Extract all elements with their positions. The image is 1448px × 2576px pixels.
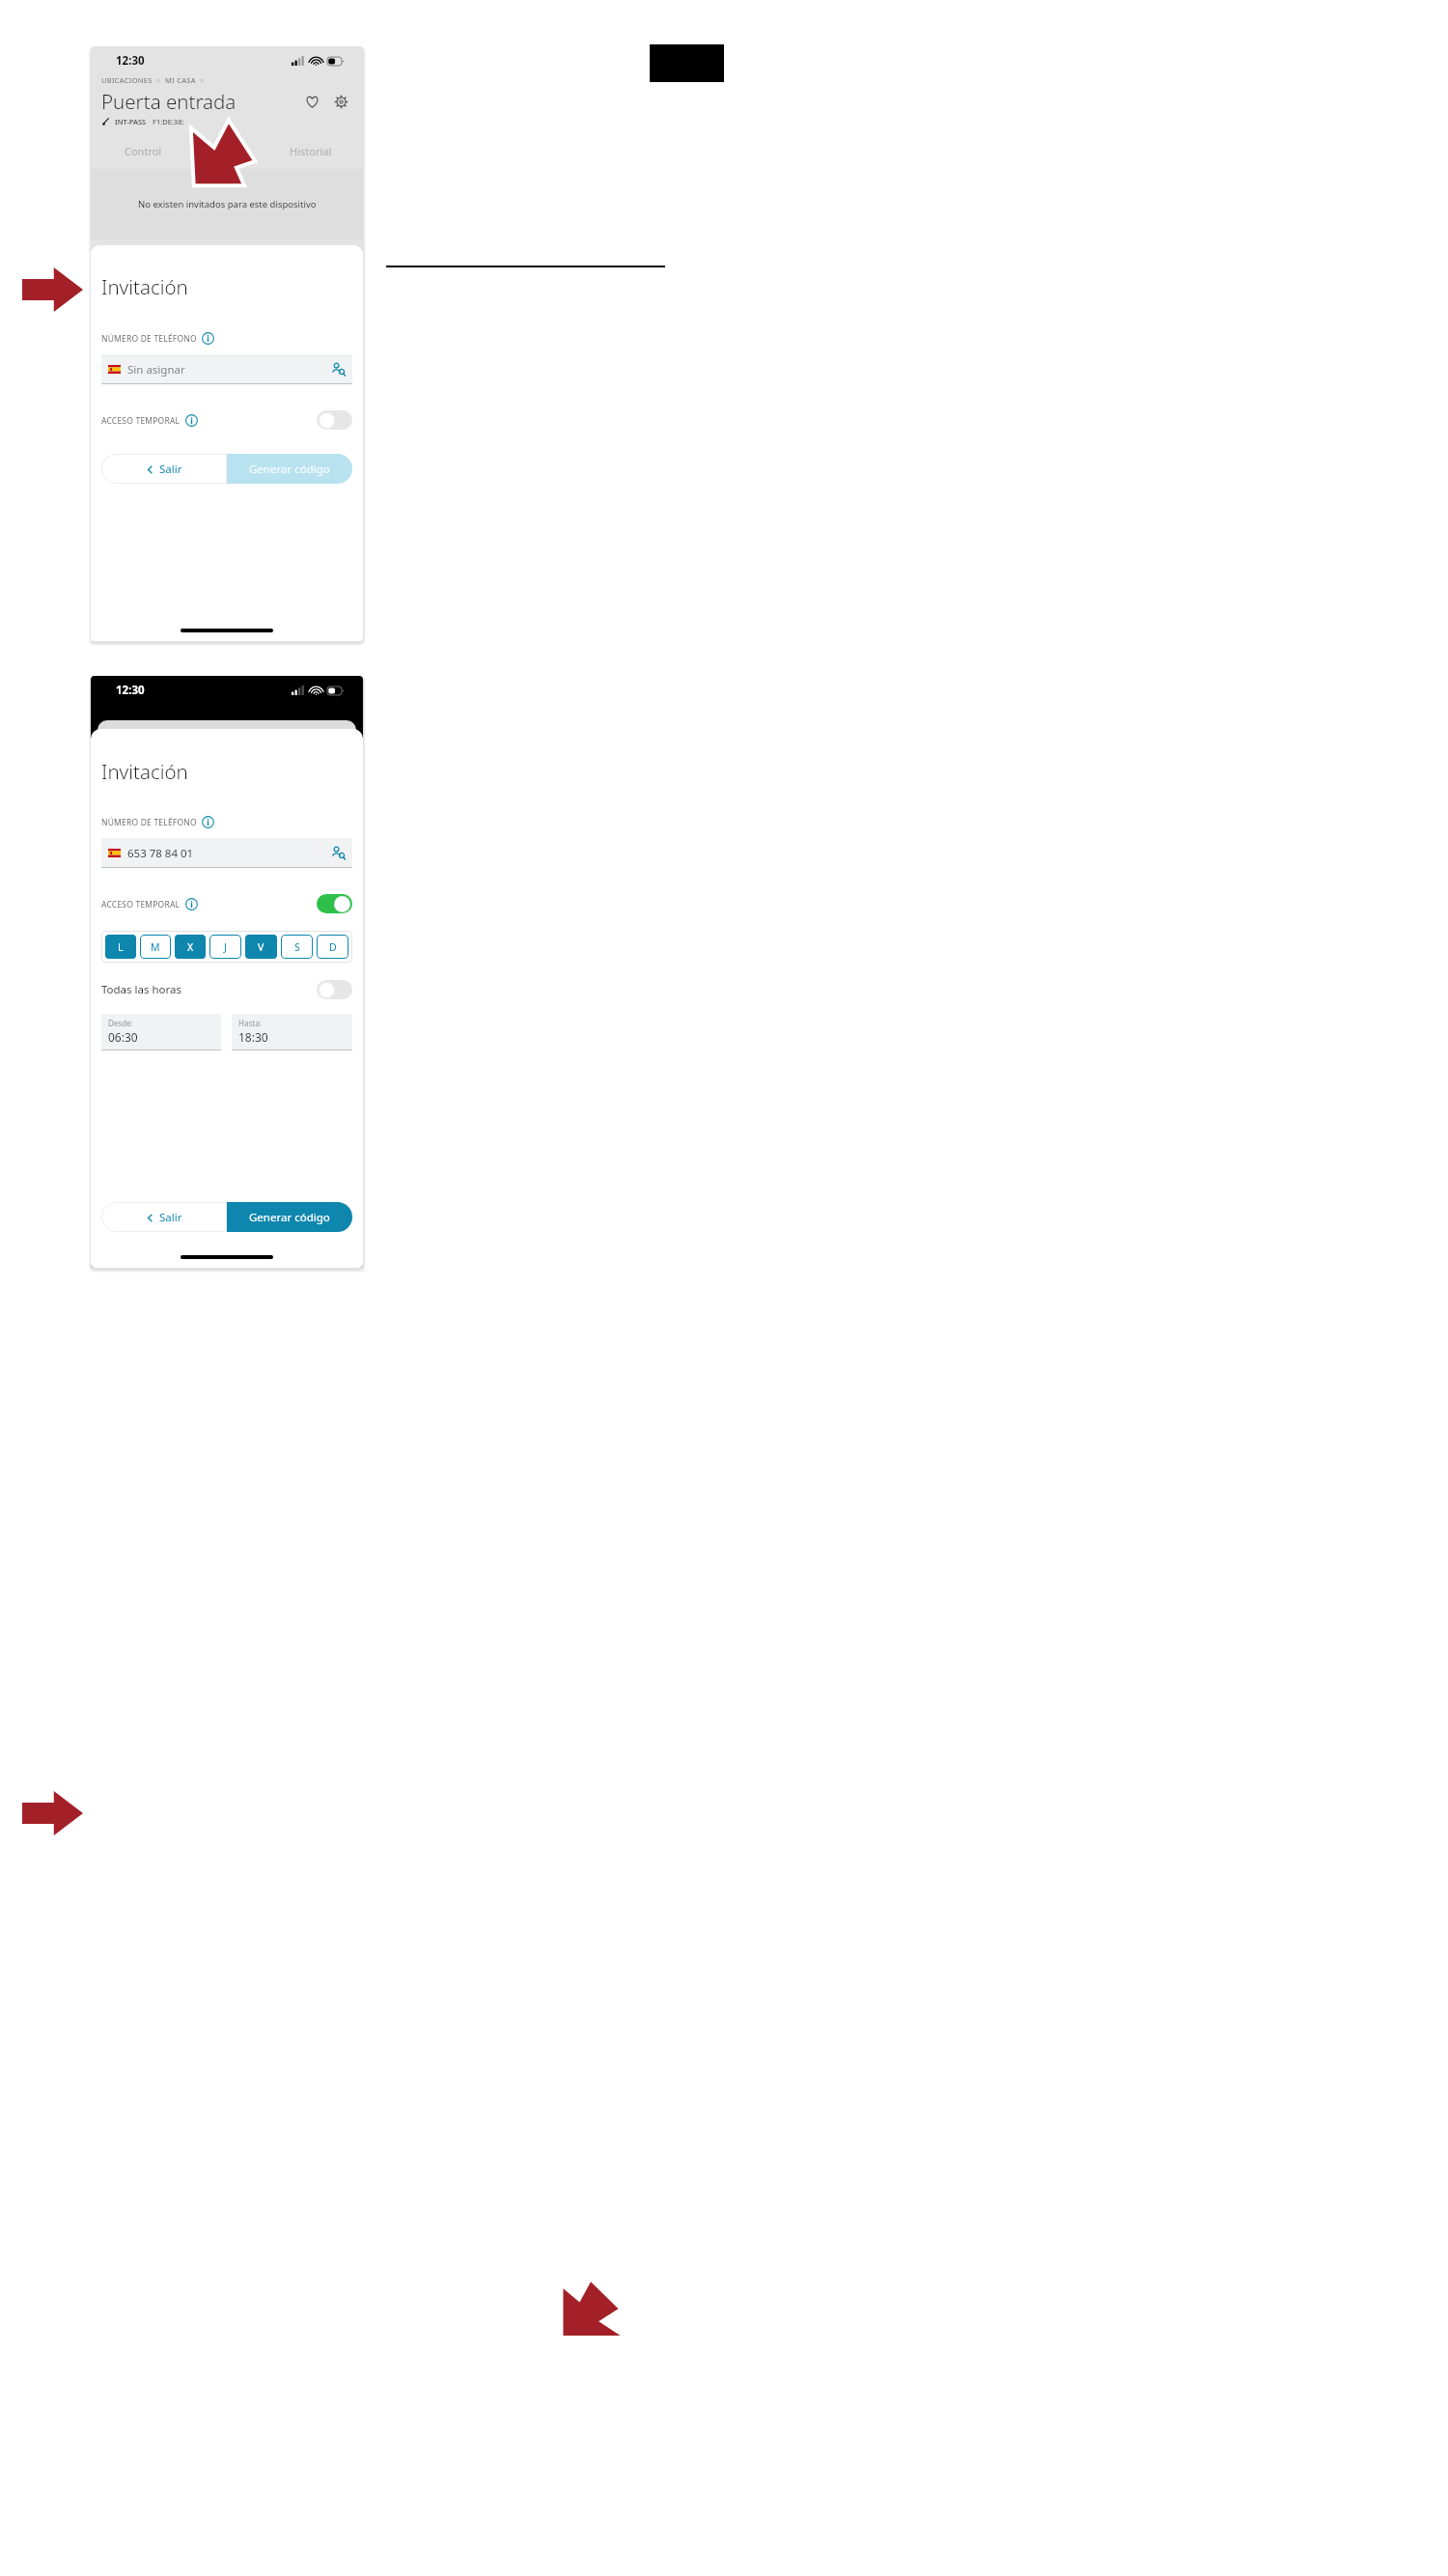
button[interactable]: V <box>245 935 277 959</box>
button[interactable]: M <box>140 935 171 959</box>
staticText: Hasta: <box>238 1018 262 1028</box>
button[interactable]: X <box>175 935 206 959</box>
staticText: Generar código <box>249 1210 330 1225</box>
staticText: D <box>329 940 337 954</box>
button[interactable]: Hasta: <box>232 1014 352 1050</box>
staticText: Invitados <box>204 144 250 158</box>
staticText: NÚMERO DE TELÉFONO <box>101 817 197 828</box>
staticText: UBICACIONES <box>101 75 153 85</box>
button[interactable]: Generar código <box>227 454 352 484</box>
button[interactable]: Todas las horas <box>101 977 352 1002</box>
button[interactable]: S <box>281 935 313 959</box>
staticText: Sin asignar <box>127 362 185 378</box>
staticText: X <box>187 940 194 954</box>
button[interactable]: L <box>105 935 136 959</box>
staticText: Puerta entrada <box>101 88 237 115</box>
button[interactable]: J <box>209 935 241 959</box>
staticText: M <box>151 940 160 954</box>
staticText: S <box>294 940 300 954</box>
staticText: > <box>196 75 205 85</box>
button[interactable]: Favorito <box>300 90 323 113</box>
staticText: MI CASA <box>165 75 196 85</box>
button[interactable]: ACCESO TEMPORAL <box>101 407 352 433</box>
button[interactable]: Desactivado <box>317 410 352 430</box>
staticText: ACCESO TEMPORAL <box>101 899 181 910</box>
button[interactable]: Historial <box>268 140 352 161</box>
button[interactable]: Invitados <box>184 140 268 161</box>
staticText: Invitación <box>101 758 188 785</box>
staticText: 12:30 <box>116 53 145 69</box>
staticText: L <box>118 940 124 954</box>
staticText: V <box>258 940 265 954</box>
button[interactable]: Activado <box>317 894 352 913</box>
button[interactable]: ACCESO TEMPORAL <box>101 891 352 916</box>
staticText: F1:DE:38: <box>153 117 184 126</box>
button[interactable]: Generar código <box>227 1202 352 1232</box>
staticText: Invitación <box>101 273 188 300</box>
staticText: Control <box>125 144 162 158</box>
staticText: No existen invitados para este dispositi… <box>138 198 317 210</box>
staticText: Desde: <box>108 1018 133 1028</box>
staticText: J <box>224 940 227 954</box>
staticText: 12:30 <box>116 683 145 698</box>
button[interactable]: Desactivado <box>317 980 352 999</box>
staticText: NÚMERO DE TELÉFONO <box>101 333 197 345</box>
button[interactable]: Salir <box>101 454 227 484</box>
button[interactable]: Sin asignar <box>101 354 352 384</box>
button[interactable]: Control <box>101 140 184 161</box>
staticText: ACCESO TEMPORAL <box>101 415 181 427</box>
button[interactable]: Desde: <box>101 1014 221 1050</box>
staticText: INT-PASS <box>115 117 147 126</box>
other: Buscar contacto <box>331 362 346 377</box>
other: Buscar contacto <box>331 846 346 860</box>
staticText: Salir <box>159 462 182 477</box>
staticText: Todas las horas <box>101 982 182 997</box>
button[interactable]: Ajustes <box>329 90 352 113</box>
button[interactable]: 653 78 84 01 <box>101 838 352 868</box>
staticText: Salir <box>159 1210 182 1225</box>
staticText: 653 78 84 01 <box>127 846 194 861</box>
staticText: 18:30 <box>238 1029 268 1045</box>
staticText: Historial <box>290 144 332 158</box>
staticText: Generar código <box>249 462 330 477</box>
button[interactable]: D <box>317 935 348 959</box>
button[interactable]: Salir <box>101 1202 227 1232</box>
staticText: > <box>153 75 165 85</box>
staticText: 06:30 <box>108 1029 138 1045</box>
